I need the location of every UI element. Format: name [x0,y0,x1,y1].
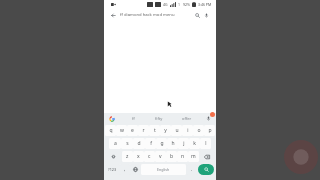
staticText: n [181,153,185,160]
staticText: ff diamond hack mod menu [120,12,194,18]
button[interactable]: v [155,151,166,162]
button[interactable]: English [141,164,186,175]
staticText: x [137,153,140,160]
button[interactable]: o [193,125,204,136]
staticText: y [164,127,167,134]
button[interactable]: e [127,125,138,136]
button[interactable]: h [167,138,178,149]
button[interactable]: a [109,138,121,149]
button[interactable]: ?123 [105,164,120,175]
staticText: i [187,127,189,134]
staticText: c [148,153,151,160]
button[interactable]: m [188,151,199,162]
staticText: fifty [155,116,163,121]
staticText: w [120,127,124,134]
button[interactable]: x [133,151,144,162]
button[interactable]: f [145,138,156,149]
button[interactable]: Comma [120,164,130,175]
staticText: o [197,127,201,134]
button[interactable]: b [166,151,177,162]
button[interactable]: n [177,151,188,162]
button[interactable]: Google [108,115,115,122]
staticText: 3:46 PM [198,2,212,7]
staticText: ?123 [108,167,117,172]
staticText: a [114,140,117,147]
staticText: j [183,140,185,147]
button[interactable]: Back [107,10,213,20]
button[interactable]: s [121,138,133,149]
staticText: p [208,127,212,134]
button[interactable]: p [204,125,215,136]
staticText: English [157,167,170,172]
button[interactable]: t [149,125,160,136]
staticText: , [124,166,126,173]
staticText: h [171,140,175,147]
staticText: . [191,166,193,173]
button[interactable]: Voice input [205,115,212,122]
staticText: k [193,140,196,147]
staticText: g [160,140,164,147]
button[interactable]: r [138,125,149,136]
button[interactable]: fifty [145,116,173,121]
button[interactable]: Shift [105,151,122,162]
button[interactable]: Voice search [203,12,210,19]
staticText: z [126,153,129,160]
button[interactable]: w [116,125,127,136]
staticText: 4G [163,2,168,7]
button[interactable]: d [133,138,145,149]
button[interactable]: i [182,125,193,136]
staticText: 92% [183,2,190,7]
button[interactable]: u [171,125,182,136]
button[interactable]: l [200,138,211,149]
button[interactable]: Search [198,164,214,175]
button[interactable]: Change language [130,164,140,175]
staticText: e [131,127,134,134]
staticText: t [154,127,156,134]
button[interactable]: Search [194,12,201,19]
button[interactable]: g [156,138,167,149]
button[interactable]: Period [187,164,197,175]
button[interactable]: Back [110,12,117,19]
staticText: ff [132,116,135,121]
staticText: v [159,153,162,160]
button[interactable]: q [105,125,116,136]
staticText: f [150,140,152,147]
staticText: offer [182,116,192,121]
button[interactable]: offer [173,116,201,121]
button[interactable]: c [144,151,155,162]
staticText: u [175,127,179,134]
staticText: r [142,127,145,134]
button[interactable]: y [160,125,171,136]
button[interactable]: z [122,151,133,162]
staticText: m [191,153,196,160]
staticText: l [205,140,207,147]
button[interactable]: j [178,138,189,149]
staticText: d [137,140,141,147]
button[interactable]: Backspace [199,151,215,162]
button[interactable]: ff [121,116,145,121]
staticText: b [170,153,174,160]
staticText: s [126,140,129,147]
staticText: q [109,127,113,134]
button[interactable]: k [189,138,200,149]
staticText: 1 [178,2,181,7]
